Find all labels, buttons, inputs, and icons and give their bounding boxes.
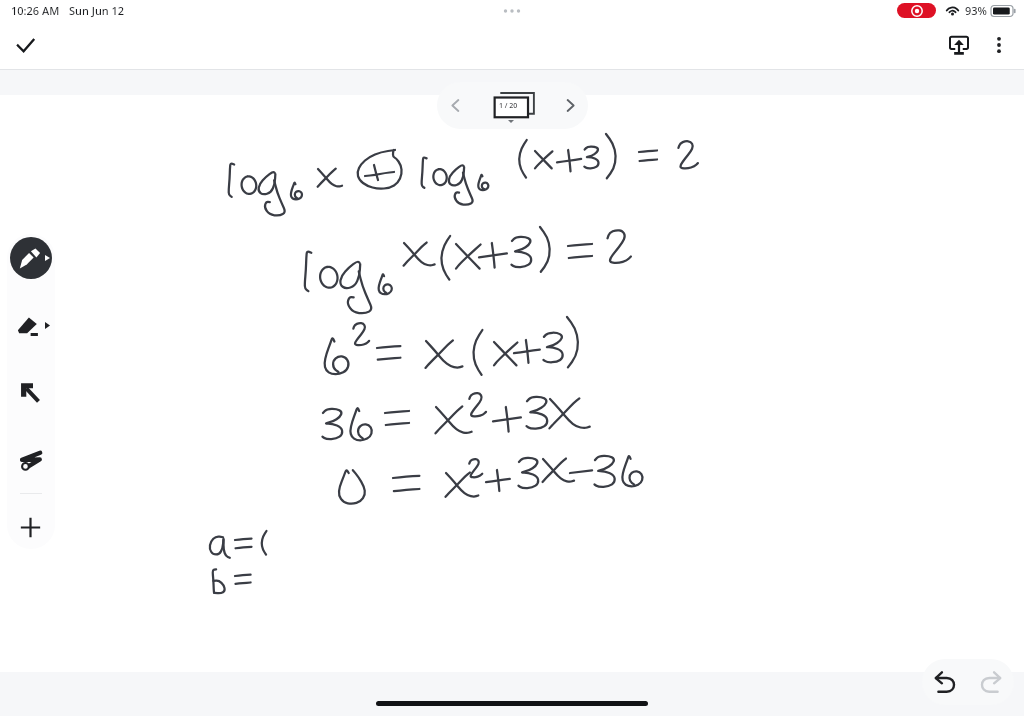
staticText: 1 / 20 (499, 101, 518, 111)
button[interactable]: Cast to display (939, 25, 979, 65)
button[interactable]: Add (7, 507, 55, 547)
button[interactable]: Undo (923, 660, 967, 704)
button[interactable]: Previous page (437, 82, 473, 129)
button[interactable]: Select (7, 372, 55, 412)
button[interactable]: 1 / 20 (473, 82, 552, 129)
staticText: 10:26 AM (11, 3, 60, 18)
button[interactable]: Lasso (7, 439, 55, 479)
button[interactable]: Done (6, 25, 46, 65)
button[interactable]: Redo (969, 660, 1013, 704)
button[interactable]: Pen (7, 236, 55, 279)
staticText: 93% (965, 3, 987, 18)
button[interactable]: Next page (552, 82, 588, 129)
button[interactable]: Recording (897, 3, 936, 18)
button[interactable]: Previous page (437, 82, 588, 129)
button[interactable]: Highlighter (7, 305, 55, 345)
staticText: Sun Jun 12 (69, 3, 125, 18)
button[interactable]: More options (979, 25, 1019, 65)
